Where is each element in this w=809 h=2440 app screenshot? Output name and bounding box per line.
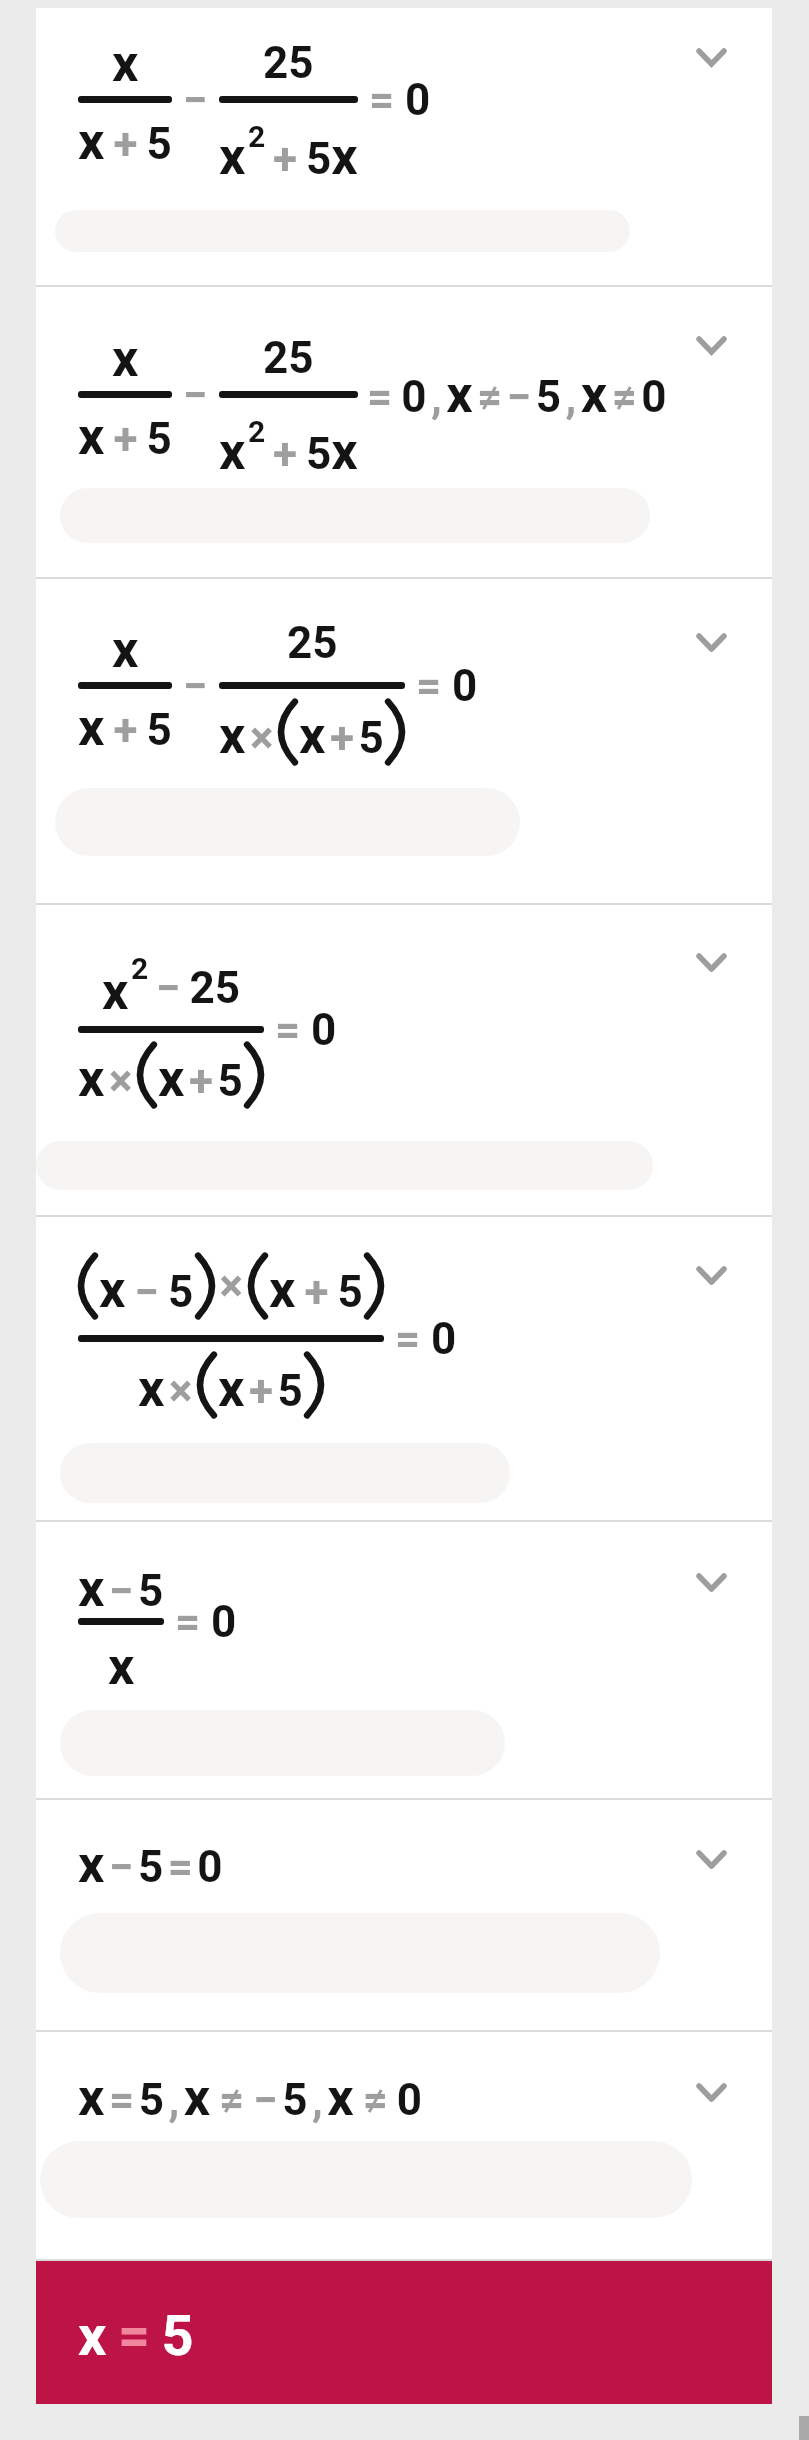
staticText: x + 5 [218, 1358, 303, 1412]
staticText: x − 5 = 0 [78, 1834, 223, 1895]
button[interactable]: x − 5 [36, 1217, 772, 1520]
staticText: x + 5 [299, 705, 384, 759]
staticText: x + 5 [78, 111, 172, 165]
staticText: x [112, 33, 139, 87]
staticText: x + 5 [269, 1259, 363, 1313]
staticText: x = 5 [78, 2303, 194, 2369]
staticText: − 25 [147, 962, 240, 1014]
staticText: = 0 [384, 1313, 457, 1365]
staticText: x [108, 1636, 135, 1690]
button[interactable]: x = 5 , x ≠ − 5 , x ≠ 0 [36, 2032, 772, 2259]
button[interactable]: x [36, 579, 772, 903]
staticText: = 0 [358, 74, 431, 126]
staticText: × [215, 1260, 248, 1312]
staticText: = 0 [405, 660, 478, 712]
staticText: x [112, 328, 139, 382]
staticText: 25 [263, 332, 314, 384]
staticText: x − 5 [99, 1259, 194, 1313]
staticText: + 5x [264, 421, 358, 475]
staticText: 25 [263, 37, 314, 89]
staticText: x × [219, 705, 278, 759]
staticText: x × [138, 1358, 197, 1412]
button[interactable]: x [36, 287, 772, 577]
staticText: x + 5 [78, 697, 172, 751]
staticText: 2 [248, 414, 266, 449]
staticText: x [219, 421, 246, 475]
staticText: − [172, 369, 219, 421]
button[interactable]: x [36, 905, 772, 1215]
staticText: 2 [131, 951, 149, 986]
staticText: = 0 [164, 1596, 237, 1648]
staticText: x − 5 [78, 1558, 164, 1612]
staticText: = 0 , x ≠ − 5 , x ≠ 0 [358, 364, 667, 425]
button[interactable]: x − 5 [36, 1522, 772, 1798]
staticText: x + 5 [78, 406, 172, 460]
staticText: + 5x [264, 126, 358, 180]
staticText: 25 [287, 617, 338, 669]
staticText: − [172, 660, 219, 712]
staticText: x [102, 961, 129, 1015]
staticText: = 0 [264, 1004, 337, 1056]
button[interactable]: x = 5 [36, 2261, 772, 2404]
button[interactable]: x [36, 8, 772, 285]
button[interactable]: x − 5 = 0 [36, 1800, 772, 2030]
staticText: x × [78, 1048, 137, 1102]
staticText: 2 [248, 119, 266, 154]
staticText: x = 5 , x ≠ − 5 , x ≠ 0 [78, 2067, 423, 2128]
staticText: x [219, 126, 246, 180]
staticText: x [112, 619, 139, 673]
staticText: x + 5 [158, 1048, 243, 1102]
staticText: − [172, 74, 219, 126]
